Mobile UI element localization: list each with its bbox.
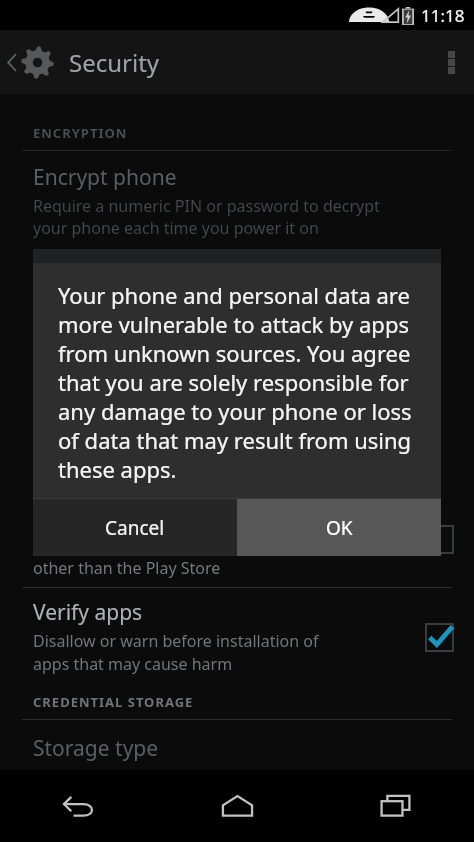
staticText: Security xyxy=(69,46,160,79)
button[interactable] xyxy=(33,249,441,293)
button[interactable]: Enabled checkbox xyxy=(416,614,462,660)
button[interactable]: Recent apps xyxy=(316,770,474,842)
button[interactable]: Back xyxy=(0,770,158,842)
button[interactable]: Verify apps xyxy=(0,598,474,675)
staticText: Cancel xyxy=(105,515,165,541)
button[interactable]: Allow installation of apps from sources … xyxy=(0,531,474,579)
staticText: Require a numeric PIN or password to dec… xyxy=(33,195,380,239)
staticText: Your phone and personal data are more vu… xyxy=(58,280,421,484)
staticText: Disallow or warn before installation of … xyxy=(33,630,319,675)
staticText: Storage type xyxy=(33,734,159,763)
staticText: OK xyxy=(326,515,353,541)
staticText: CREDENTIAL STORAGE xyxy=(33,693,194,711)
button[interactable]: Encrypt phone xyxy=(0,163,474,239)
staticText: ENCRYPTION xyxy=(33,124,128,142)
button[interactable]: Home xyxy=(158,770,316,842)
staticText: 11:18 xyxy=(421,4,465,27)
button[interactable]: Disabled checkbox xyxy=(416,516,462,562)
staticText: Allow installation of apps from sources … xyxy=(33,534,416,579)
button[interactable]: Security xyxy=(0,30,176,94)
staticText: Verify apps xyxy=(33,598,143,627)
button[interactable]: More options xyxy=(428,30,474,94)
staticText: Encrypt phone xyxy=(33,163,177,192)
button[interactable]: Cancel xyxy=(33,499,237,556)
button[interactable]: OK xyxy=(237,499,441,556)
